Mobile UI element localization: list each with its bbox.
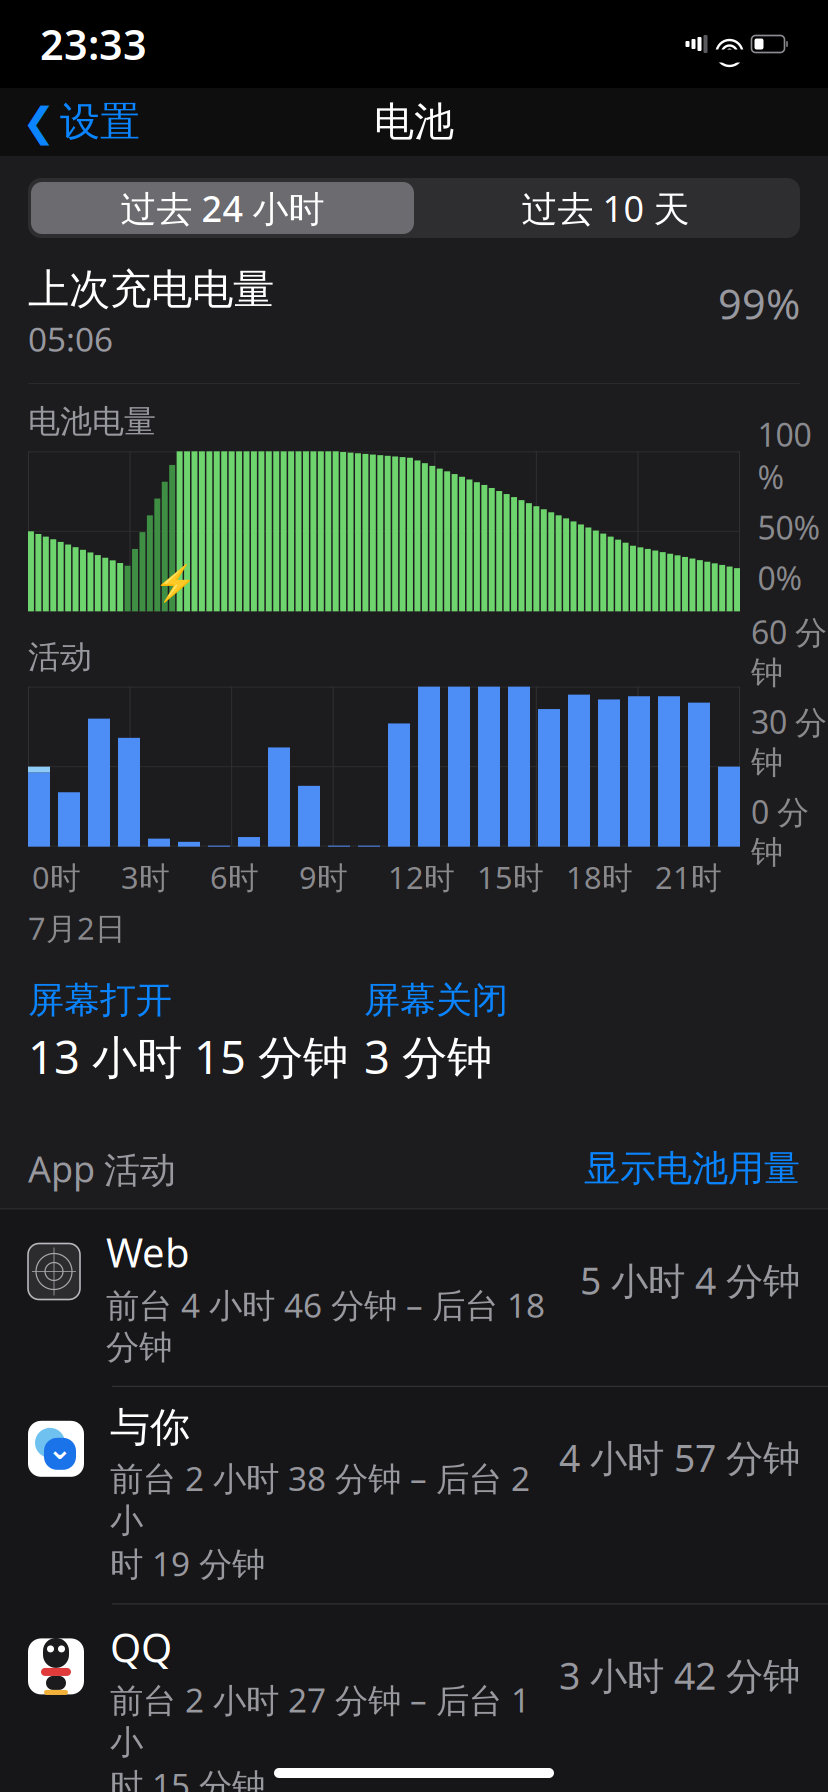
staticText: 9时	[299, 857, 348, 897]
staticText: 屏幕关闭	[364, 978, 508, 1022]
staticText: 05:06	[28, 317, 113, 361]
staticText: 99%	[718, 276, 800, 331]
staticText: 前台 2 小时 27 分钟 – 后台 1 小 时 15 分钟	[110, 1677, 530, 1792]
staticText: 活动	[28, 637, 92, 677]
staticText: 7月2日	[28, 907, 126, 948]
staticText: 100%	[757, 413, 811, 498]
staticText: 设置	[60, 97, 140, 146]
staticText: 3 分钟	[364, 1026, 492, 1086]
staticText: 13 小时 15 分钟	[28, 1026, 348, 1086]
staticText: 15时	[477, 857, 544, 897]
staticText: 屏幕打开	[28, 978, 172, 1022]
staticText: 18时	[566, 857, 633, 897]
staticText: 3 小时 42 分钟	[559, 1650, 800, 1700]
staticText: 过去 24 小时	[120, 184, 324, 232]
staticText: App 活动	[28, 1144, 176, 1192]
staticText: 前台 4 小时 46 分钟 – 后台 18 分钟	[106, 1283, 545, 1368]
button[interactable]: 过去 24 小时	[31, 182, 414, 234]
staticText: 0时	[32, 857, 81, 897]
staticText: ❮	[22, 99, 56, 145]
staticText: 23:33	[40, 17, 147, 71]
staticText: 电池	[374, 97, 454, 146]
staticText: 电池电量	[28, 402, 156, 441]
staticText: 6时	[210, 857, 259, 897]
staticText: 50%	[757, 506, 820, 548]
staticText: 30 分钟	[751, 700, 827, 782]
staticText: 前台 2 小时 38 分钟 – 后台 2 小 时 19 分钟	[110, 1456, 530, 1585]
staticText: 21时	[655, 857, 722, 897]
button[interactable]: ❮	[22, 89, 150, 154]
staticText: 过去 10 天	[521, 184, 689, 232]
button[interactable]: 显示电池用量	[584, 1146, 800, 1191]
staticText: 与你	[110, 1403, 190, 1452]
staticText: 60 分钟	[751, 611, 827, 692]
staticText: 3时	[121, 857, 170, 897]
staticText: 显示电池用量	[584, 1146, 800, 1191]
staticText: 上次充电电量	[28, 264, 274, 315]
staticText: 0%	[757, 556, 802, 599]
staticText: ⚡	[154, 564, 197, 603]
staticText: 12时	[388, 857, 455, 897]
staticText: ⌄	[47, 1432, 72, 1465]
button[interactable]: ⌄	[0, 1386, 828, 1603]
staticText: 5 小时 4 分钟	[580, 1255, 800, 1305]
button[interactable]: Web	[0, 1209, 828, 1386]
staticText: QQ	[110, 1620, 172, 1673]
button[interactable]: QQ	[0, 1603, 828, 1792]
staticText: 4 小时 57 分钟	[559, 1433, 800, 1482]
staticText: 0 分钟	[751, 790, 809, 872]
button[interactable]: 过去 10 天	[414, 182, 797, 234]
staticText: Web	[106, 1225, 190, 1279]
